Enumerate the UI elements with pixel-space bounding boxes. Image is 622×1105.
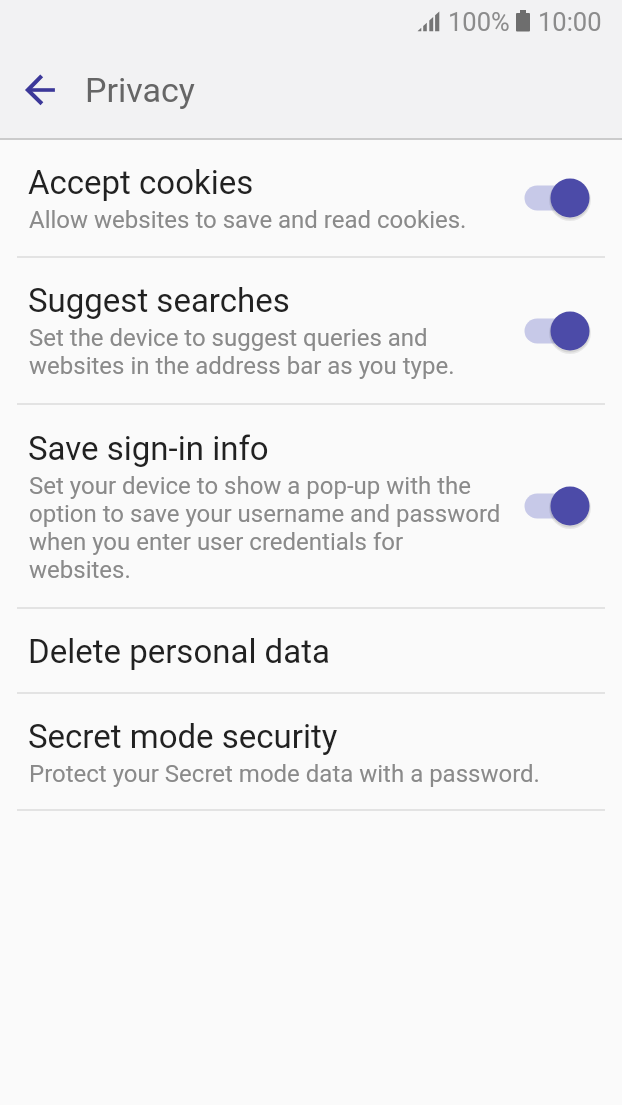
staticText: 10:00: [538, 7, 602, 37]
button[interactable]: Secret mode security: [0, 694, 622, 809]
button[interactable]: [524, 310, 590, 352]
button[interactable]: Save sign-in info: [0, 405, 622, 607]
staticText: Delete personal data: [28, 632, 330, 671]
staticText: Save sign-in info: [28, 429, 269, 468]
button[interactable]: [24, 72, 60, 108]
button[interactable]: [524, 177, 590, 219]
staticText: Secret mode security: [28, 717, 338, 756]
staticText: Accept cookies: [28, 163, 254, 202]
button[interactable]: [524, 485, 590, 527]
button[interactable]: Delete personal data: [0, 609, 622, 692]
staticText: Suggest searches: [28, 281, 290, 320]
staticText: Protect your Secret mode data with a pas…: [29, 760, 540, 788]
staticText: Privacy: [85, 70, 195, 110]
staticText: Allow websites to save and read cookies.: [29, 206, 467, 234]
button[interactable]: Accept cookies: [0, 140, 622, 256]
staticText: Set the device to suggest queries and we…: [29, 324, 455, 380]
staticText: 100%: [448, 7, 510, 37]
staticText: Set your device to show a pop-up with th…: [29, 472, 501, 584]
button[interactable]: Suggest searches: [0, 258, 622, 403]
